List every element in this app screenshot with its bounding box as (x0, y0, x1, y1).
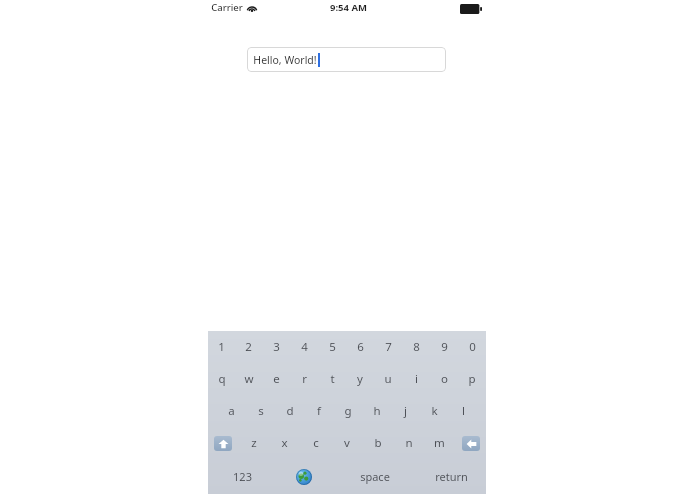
staticText: 0 (469, 339, 476, 355)
button[interactable]: g (333, 395, 362, 427)
button[interactable]: z (238, 427, 269, 459)
staticText: y (357, 371, 363, 387)
staticText: 5 (329, 339, 336, 355)
button[interactable]: s (246, 395, 275, 427)
button[interactable]: w (235, 363, 262, 395)
staticText: k (431, 403, 438, 419)
staticText: d (286, 403, 294, 419)
button[interactable]: 123 (208, 459, 276, 494)
staticText: 3 (273, 339, 280, 355)
staticText: a (228, 403, 235, 419)
staticText: 2 (245, 339, 252, 355)
button[interactable]: k (420, 395, 449, 427)
button[interactable]: d (275, 395, 304, 427)
staticText: 123 (233, 469, 252, 484)
button[interactable]: r (290, 363, 318, 395)
button[interactable]: 0 (458, 331, 486, 363)
button[interactable]: 4 (290, 331, 318, 363)
staticText: 7 (385, 339, 392, 355)
staticText: i (415, 371, 418, 387)
staticText: v (344, 435, 350, 451)
staticText: space (360, 469, 390, 484)
staticText: f (317, 403, 321, 419)
button[interactable]: 9 (430, 331, 458, 363)
button[interactable]: o (430, 363, 458, 395)
button[interactable]: l (449, 395, 478, 427)
button[interactable]: x (269, 427, 300, 459)
button[interactable]: return (417, 459, 486, 494)
button[interactable]: c (300, 427, 331, 459)
button[interactable]: h (362, 395, 391, 427)
button[interactable]: p (458, 363, 486, 395)
button[interactable]: Backspace (455, 427, 486, 459)
button[interactable]: 2 (235, 331, 262, 363)
staticText: Hello, World! (253, 53, 317, 67)
staticText: g (344, 403, 352, 419)
staticText: 4 (301, 339, 308, 355)
button[interactable]: y (346, 363, 374, 395)
button[interactable]: 6 (346, 331, 374, 363)
staticText: 6 (357, 339, 364, 355)
button[interactable]: e (262, 363, 290, 395)
button[interactable]: q (208, 363, 235, 395)
staticText: t (330, 371, 335, 387)
staticText: n (405, 435, 413, 451)
staticText: p (468, 371, 476, 387)
staticText: q (218, 371, 226, 387)
staticText: l (462, 403, 465, 419)
button[interactable]: u (374, 363, 402, 395)
staticText: Carrier (211, 1, 243, 14)
staticText: 9:54 AM (330, 1, 367, 14)
staticText: c (313, 435, 319, 451)
button[interactable]: t (318, 363, 346, 395)
staticText: o (441, 371, 448, 387)
staticText: e (273, 371, 280, 387)
button[interactable]: b (362, 427, 393, 459)
button[interactable]: 7 (374, 331, 402, 363)
button[interactable]: m (424, 427, 455, 459)
staticText: 8 (413, 339, 420, 355)
button[interactable]: f (304, 395, 333, 427)
button[interactable]: j (391, 395, 420, 427)
staticText: m (434, 435, 445, 451)
button[interactable]: 1 (208, 331, 235, 363)
staticText: u (384, 371, 392, 387)
button[interactable]: 3 (262, 331, 290, 363)
button[interactable]: a (216, 395, 246, 427)
staticText: b (374, 435, 382, 451)
button[interactable]: 8 (402, 331, 430, 363)
button[interactable]: space (332, 459, 417, 494)
button[interactable]: Shift (208, 427, 238, 459)
button[interactable]: v (331, 427, 362, 459)
staticText: s (258, 403, 264, 419)
button[interactable]: Hello, World! (247, 47, 446, 72)
button[interactable]: n (393, 427, 424, 459)
staticText: h (373, 403, 381, 419)
staticText: z (251, 435, 257, 451)
staticText: w (244, 371, 254, 387)
staticText: 9 (441, 339, 448, 355)
button[interactable]: i (402, 363, 430, 395)
staticText: r (302, 371, 307, 387)
staticText: return (435, 469, 468, 484)
staticText: x (281, 435, 288, 451)
button[interactable]: Change keyboard language (276, 459, 332, 494)
staticText: j (404, 403, 407, 419)
button[interactable]: 5 (318, 331, 346, 363)
staticText: 1 (218, 339, 225, 355)
